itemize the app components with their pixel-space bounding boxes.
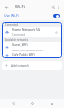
button[interactable]: Cafe Public WiFi	[2, 51, 62, 58]
staticText: Connected	[12, 33, 26, 37]
button[interactable]: More options	[56, 5, 61, 10]
staticText: Cafe Public WiFi	[12, 53, 35, 57]
button[interactable]: Network settings	[54, 30, 59, 35]
button[interactable]: Add network	[2, 61, 62, 70]
button[interactable]: Guest_WiFi	[2, 42, 62, 51]
staticText: Saved, secured with WPA2	[12, 48, 43, 51]
button[interactable]: Search	[50, 4, 56, 10]
staticText: Available networks	[5, 38, 28, 42]
button[interactable]: Home	[25, 99, 39, 108]
button[interactable]: Back	[3, 4, 9, 10]
button[interactable]: Recents	[45, 99, 59, 108]
staticText: Wi-Fi	[15, 4, 25, 10]
staticText: Guest_WiFi	[12, 43, 28, 47]
button[interactable]: Wi-Fi toggle	[53, 14, 60, 18]
staticText: Use Wi-Fi	[4, 13, 19, 18]
button[interactable]: Home Network 5G	[2, 27, 62, 37]
button[interactable]: Back	[6, 99, 20, 108]
staticText: Add network	[11, 64, 30, 68]
button[interactable]: Use Wi-Fi	[0, 11, 64, 20]
staticText: Connected	[5, 23, 19, 27]
staticText: Home Network 5G	[12, 28, 41, 32]
